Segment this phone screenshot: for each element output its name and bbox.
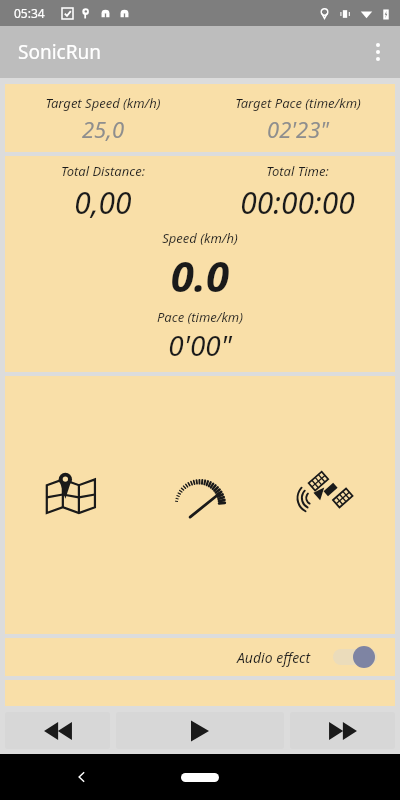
- button[interactable]: Rewind: [5, 712, 110, 749]
- staticText: Target Speed (km/h): [45, 94, 161, 112]
- staticText: 0'00": [5, 326, 395, 364]
- staticText: 0.0: [5, 247, 395, 304]
- button[interactable]: More options: [356, 30, 400, 74]
- button[interactable]: Audio effect: [5, 638, 395, 676]
- staticText: 00:00:00: [240, 182, 355, 223]
- button[interactable]: Speedometer: [169, 460, 231, 522]
- button[interactable]: Play: [116, 712, 284, 749]
- button[interactable]: Back: [70, 765, 94, 789]
- staticText: Audio effect: [237, 648, 311, 667]
- button[interactable]: GPS satellite: [301, 462, 359, 520]
- button[interactable]: Fast forward: [290, 712, 395, 749]
- staticText: SonicRun: [18, 39, 101, 65]
- staticText: Target Pace (time/km): [235, 94, 361, 112]
- button[interactable]: Audio effect toggle: [333, 646, 377, 668]
- button[interactable]: Home: [181, 773, 219, 782]
- staticText: 02'23": [267, 114, 329, 144]
- staticText: Pace (time/km): [5, 308, 395, 326]
- button[interactable]: Map: [41, 462, 99, 520]
- staticText: 0,00: [74, 182, 132, 223]
- staticText: Total Distance:: [61, 162, 145, 180]
- staticText: 25,0: [82, 114, 124, 144]
- staticText: Speed (km/h): [5, 229, 395, 247]
- staticText: 05:34: [14, 5, 45, 21]
- staticText: Total Time:: [266, 162, 329, 180]
